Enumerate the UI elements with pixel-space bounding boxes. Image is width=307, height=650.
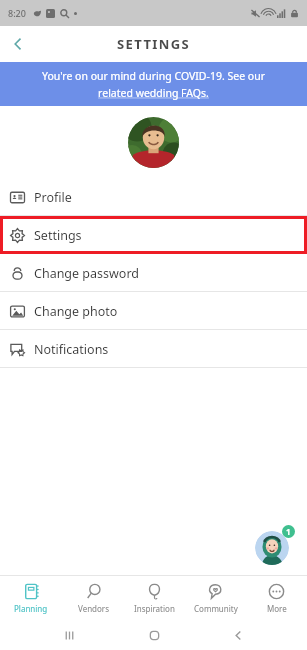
button[interactable]: More (246, 576, 307, 620)
staticText: SETTINGS (117, 35, 191, 53)
staticText: Change password (34, 265, 140, 282)
button[interactable]: Chat, 1 unread (255, 525, 295, 565)
button[interactable]: Back (223, 620, 253, 650)
staticText: Profile (34, 189, 72, 206)
button[interactable]: You're on our mind during COVID-19. See … (0, 62, 307, 106)
staticText: 1 (286, 526, 291, 537)
staticText: Settings (34, 227, 82, 244)
button[interactable]: Community (185, 576, 246, 620)
button[interactable]: Planning (0, 576, 62, 620)
staticText: Planning (14, 603, 48, 614)
staticText: Notifications (34, 341, 109, 358)
button[interactable]: Change password (0, 254, 307, 292)
button[interactable]: Vendors (62, 576, 124, 620)
staticText: Inspiration (134, 603, 175, 614)
staticText: You're on our mind during COVID-19. See … (42, 69, 265, 83)
staticText: More (267, 603, 287, 614)
staticText: 8:20 (8, 7, 26, 19)
button[interactable]: Recents (54, 620, 84, 650)
button[interactable]: Notifications (0, 330, 307, 368)
button[interactable]: Profile photo (128, 117, 179, 168)
staticText: Community (194, 603, 238, 614)
staticText: Vendors (78, 603, 109, 614)
button[interactable]: Inspiration (124, 576, 185, 620)
button[interactable]: Change photo (0, 292, 307, 330)
button[interactable]: Back (0, 26, 36, 62)
button[interactable]: Profile (0, 178, 307, 216)
button[interactable]: Settings (0, 216, 307, 254)
button[interactable]: Home (139, 620, 169, 650)
staticText: related wedding FAQs. (98, 86, 209, 100)
staticText: Change photo (34, 303, 118, 320)
